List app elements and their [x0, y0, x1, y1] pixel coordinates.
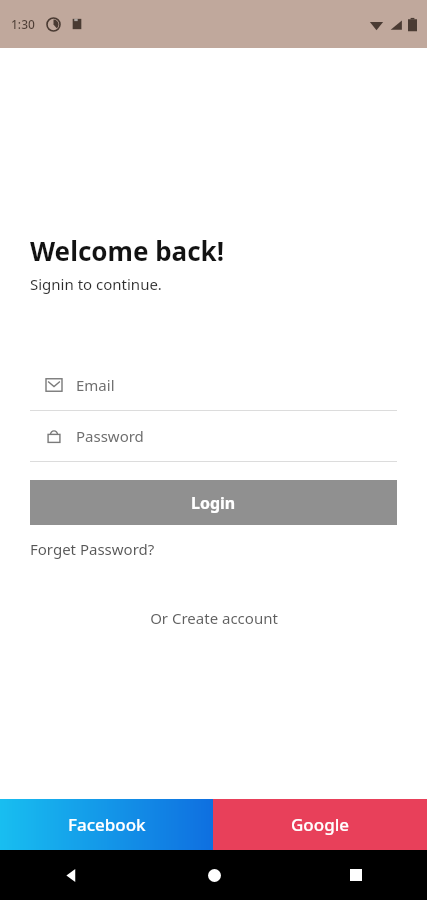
button[interactable]: Forget Password?: [30, 539, 155, 559]
button[interactable]: Login: [30, 480, 397, 525]
button[interactable]: Password: [30, 411, 397, 462]
button[interactable]: Email: [30, 360, 397, 411]
button[interactable]: Home: [143, 850, 285, 900]
button[interactable]: Back: [0, 850, 143, 900]
staticText: Email: [76, 375, 115, 395]
staticText: Forget Password?: [30, 539, 155, 559]
staticText: Login: [191, 492, 236, 514]
staticText: Facebook: [68, 813, 146, 836]
staticText: Google: [291, 813, 350, 836]
staticText: Welcome back!: [30, 233, 225, 268]
button[interactable]: Recent apps: [285, 850, 427, 900]
staticText: Or Create account: [150, 608, 278, 628]
button[interactable]: Facebook: [0, 799, 213, 850]
staticText: 1:30: [11, 16, 35, 32]
button[interactable]: Or Create account: [142, 604, 286, 632]
staticText: Signin to continue.: [30, 274, 162, 294]
staticText: Password: [76, 426, 144, 446]
button[interactable]: Google: [213, 799, 427, 850]
